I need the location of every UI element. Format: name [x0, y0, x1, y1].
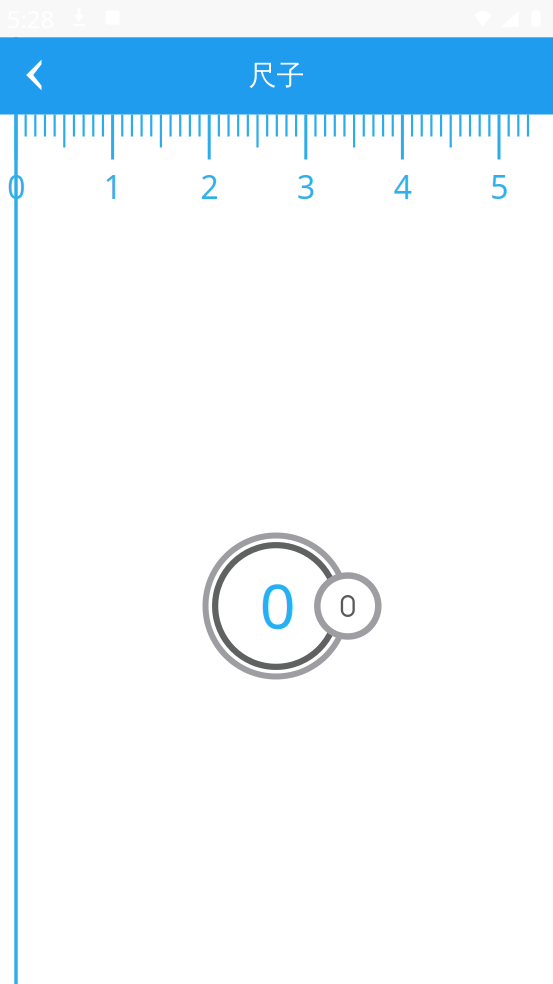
- staticText: 2: [200, 165, 218, 208]
- staticText: 尺子: [248, 58, 304, 93]
- staticText: 0: [7, 165, 25, 208]
- staticText: 1: [104, 165, 122, 208]
- button[interactable]: Back: [7, 47, 63, 103]
- staticText: 0: [259, 563, 295, 646]
- staticText: 4: [393, 165, 411, 208]
- staticText: 5: [490, 165, 508, 208]
- button[interactable]: Measurement 0: [205, 535, 383, 676]
- staticText: 3: [297, 165, 315, 208]
